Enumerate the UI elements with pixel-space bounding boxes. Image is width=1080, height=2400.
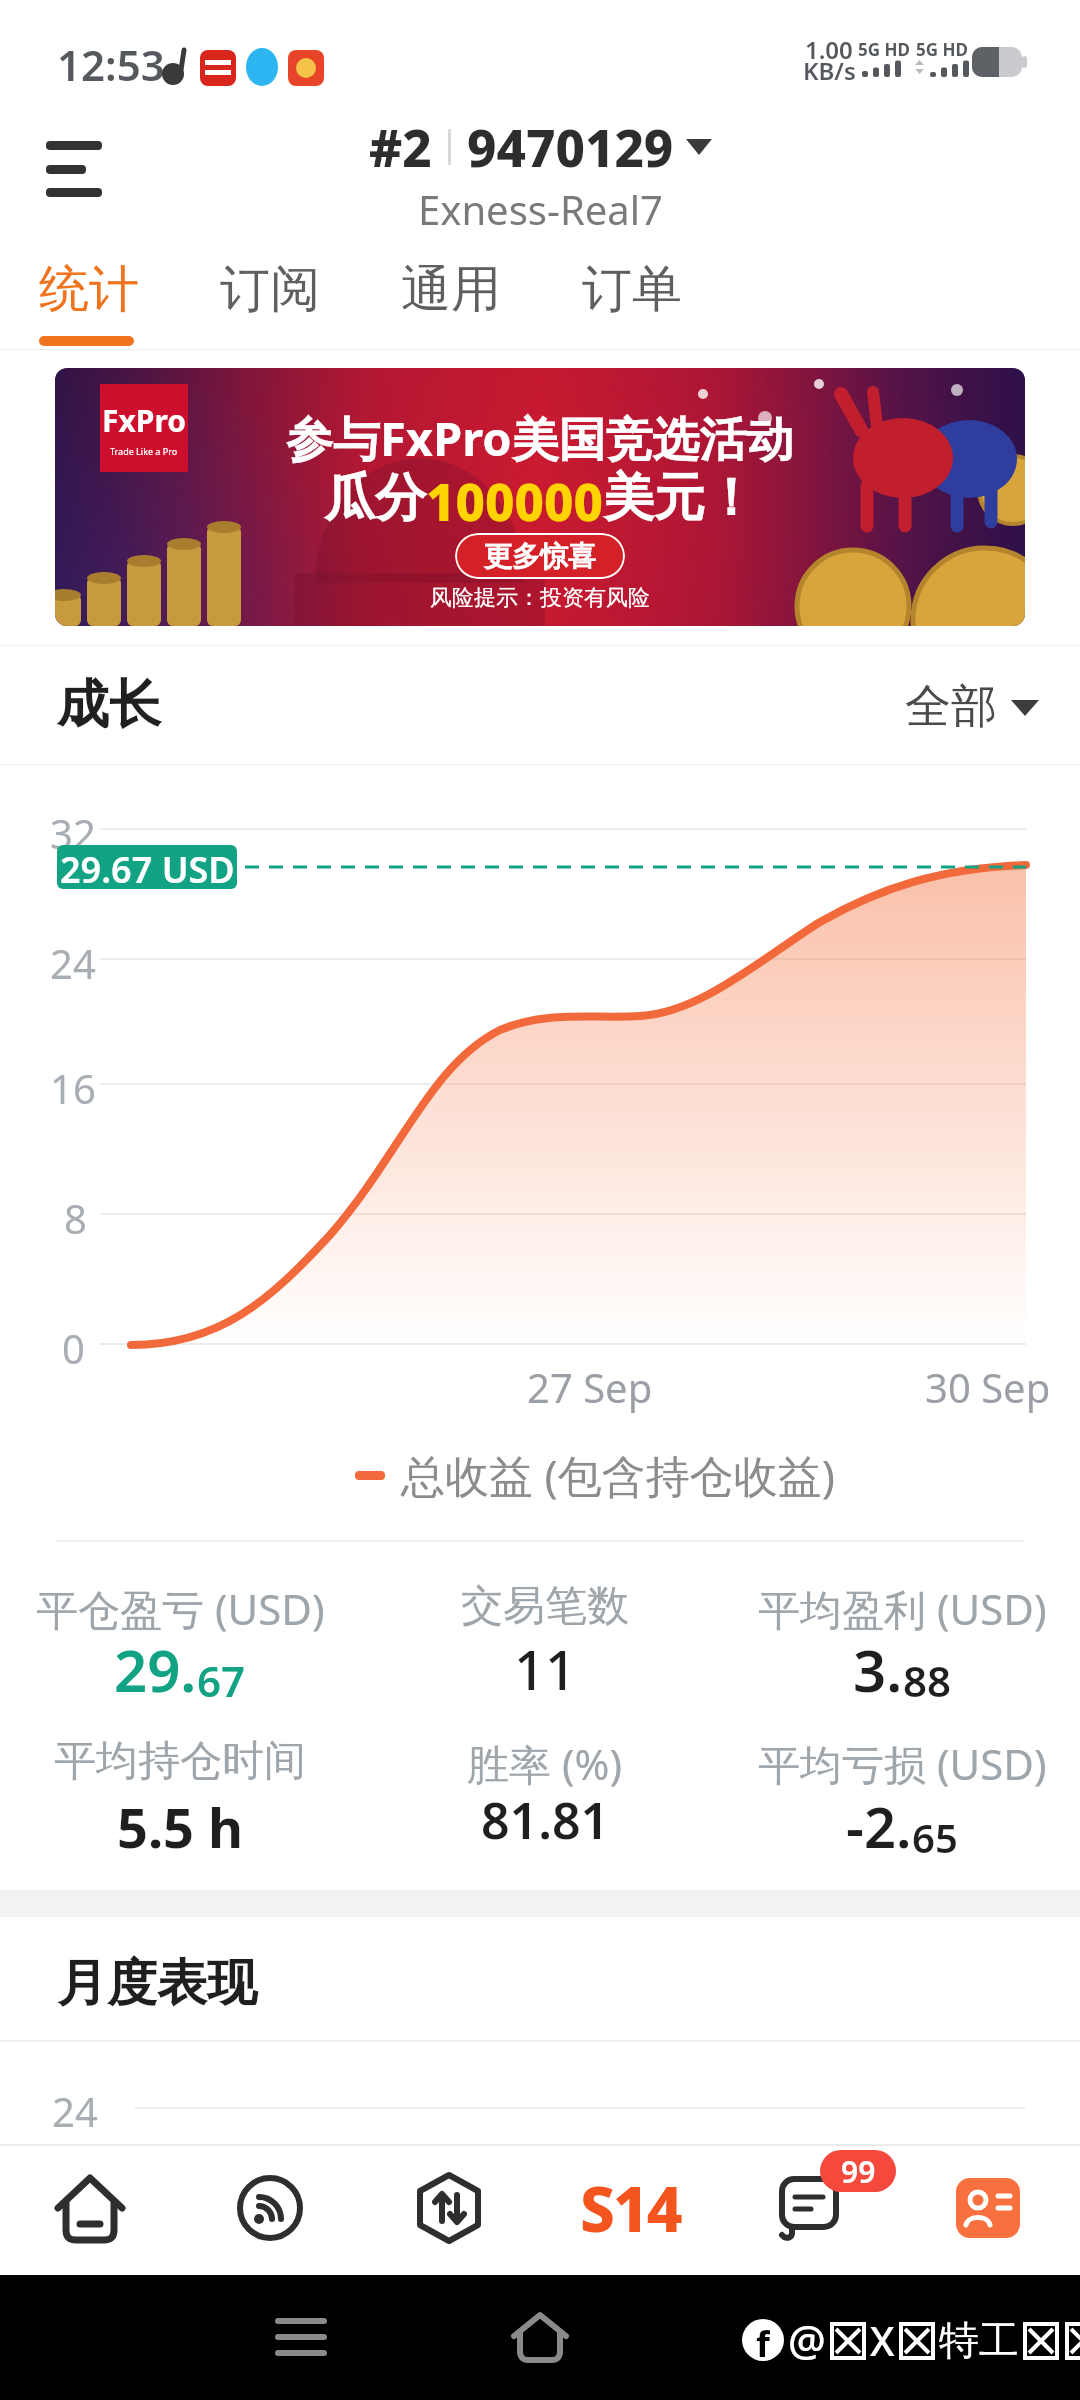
- button[interactable]: FxPro: [55, 368, 1025, 626]
- staticText: 12:53: [57, 36, 165, 93]
- staticText: 特工: [939, 2315, 1019, 2365]
- staticText: 11: [514, 1632, 576, 1706]
- staticText: 5G HD: [858, 38, 910, 61]
- staticText: FxPro: [102, 400, 186, 441]
- staticText: 总收益 (包含持仓收益): [401, 1445, 835, 1505]
- staticText: 成长: [57, 672, 161, 738]
- staticText: 月度表现: [57, 1952, 257, 2015]
- staticText: 更多惊喜: [484, 539, 596, 574]
- staticText: 65: [912, 1810, 958, 1864]
- button[interactable]: 全部: [905, 678, 1039, 736]
- staticText: 81.81: [481, 1786, 610, 1854]
- staticText: 平均持仓时间: [54, 1735, 306, 1788]
- staticText: 参与FxPro美国竞选活动: [286, 406, 794, 470]
- staticText: 美元！: [603, 466, 756, 530]
- staticText: 平仓盈亏 (USD): [36, 1580, 325, 1637]
- staticText: 全部: [905, 678, 997, 736]
- staticText: 88: [903, 1652, 952, 1709]
- button[interactable]: [399, 2160, 499, 2256]
- staticText: 8: [64, 1191, 87, 1245]
- staticText: 5.5 h: [117, 1790, 244, 1864]
- button[interactable]: #2: [0, 112, 1080, 181]
- staticText: 平均盈利 (USD): [758, 1580, 1047, 1637]
- staticText: 16: [50, 1061, 96, 1115]
- button[interactable]: [938, 2160, 1038, 2256]
- staticText: 30 Sep: [925, 1360, 1051, 1414]
- staticText: -2.: [846, 1788, 912, 1864]
- staticText: 67: [197, 1652, 246, 1709]
- staticText: 29.67 USD: [60, 845, 235, 889]
- button[interactable]: 订阅: [220, 258, 320, 321]
- staticText: Trade Like a Pro: [110, 445, 178, 457]
- staticText: 交易笔数: [461, 1580, 629, 1633]
- staticText: #2: [369, 112, 432, 181]
- staticText: 29.: [114, 1630, 197, 1709]
- staticText: 3.: [853, 1630, 903, 1709]
- button[interactable]: [46, 141, 106, 197]
- staticText: Exness-Real7: [418, 182, 663, 236]
- staticText: 24: [50, 936, 96, 990]
- button[interactable]: 订单: [582, 258, 682, 321]
- staticText: 1.00: [805, 33, 853, 66]
- button[interactable]: [759, 2160, 859, 2256]
- button[interactable]: 统计: [39, 258, 139, 321]
- staticText: 27 Sep: [527, 1360, 653, 1414]
- staticText: 100000: [426, 466, 603, 535]
- button[interactable]: [40, 2160, 140, 2256]
- staticText: S14: [580, 2166, 681, 2250]
- staticText: 瓜分: [324, 466, 426, 530]
- staticText: 平均亏损 (USD): [758, 1735, 1047, 1792]
- button[interactable]: 更多惊喜: [455, 533, 625, 579]
- staticText: X: [870, 2313, 895, 2367]
- button[interactable]: S14: [570, 2160, 690, 2256]
- staticText: 0: [62, 1321, 85, 1375]
- staticText: f: [756, 2319, 770, 2361]
- staticText: 9470129: [467, 112, 674, 181]
- button[interactable]: 通用: [401, 258, 501, 321]
- staticText: 32: [50, 806, 96, 860]
- staticText: 胜率 (%): [467, 1735, 623, 1792]
- staticText: 风险提示：投资有风险: [430, 584, 650, 612]
- staticText: 99: [841, 2151, 876, 2192]
- staticText: KB/s: [803, 54, 856, 87]
- staticText: @: [788, 2311, 826, 2368]
- staticText: 24: [52, 2084, 98, 2138]
- button[interactable]: [220, 2160, 320, 2256]
- staticText: 5G HD: [916, 38, 968, 61]
